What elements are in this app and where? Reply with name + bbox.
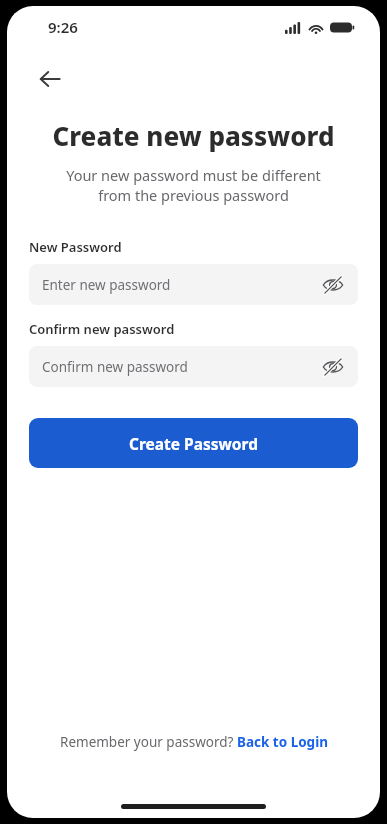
staticText: Confirm new password [42, 358, 321, 376]
button[interactable]: Enter new password [29, 264, 358, 305]
staticText: Remember your password? Back to Login [60, 733, 328, 751]
staticText: 9:26 [48, 17, 78, 37]
staticText: Confirm new password [29, 320, 175, 338]
staticText: Create Password [129, 433, 258, 454]
button[interactable]: Create Password [29, 418, 358, 468]
staticText: Create new password [17, 118, 370, 153]
staticText: Your new password must be different from… [27, 165, 360, 206]
button[interactable]: Show password [321, 355, 345, 379]
staticText: New Password [29, 238, 122, 256]
button[interactable]: Remember your password? Back to Login [56, 730, 332, 754]
button[interactable]: Back [27, 56, 73, 102]
staticText: Enter new password [42, 276, 321, 294]
button[interactable]: Show password [321, 273, 345, 297]
button[interactable]: Confirm new password [29, 346, 358, 387]
